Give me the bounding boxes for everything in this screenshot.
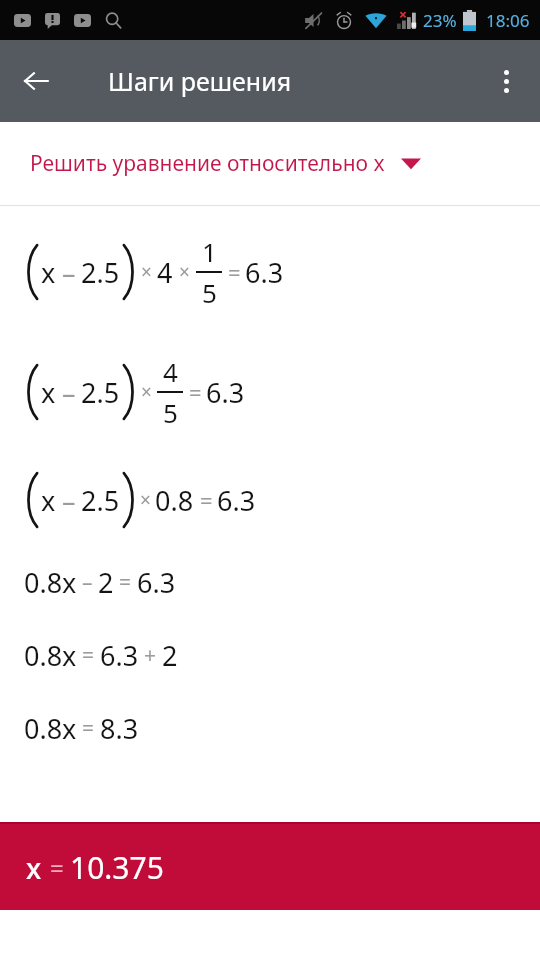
staticText: × bbox=[140, 487, 151, 513]
staticText: 6.3 bbox=[245, 254, 284, 291]
staticText: – bbox=[82, 568, 93, 597]
staticText: + bbox=[144, 641, 157, 670]
staticText: 0.8x bbox=[24, 637, 77, 674]
staticText: – bbox=[62, 254, 76, 291]
staticText: = bbox=[50, 851, 64, 884]
staticText: 6.3 bbox=[100, 637, 139, 674]
staticText: × bbox=[179, 259, 190, 285]
staticText: – bbox=[62, 374, 76, 411]
staticText: 4 bbox=[157, 254, 173, 291]
staticText: Решить уравнение относительно x bbox=[30, 149, 385, 178]
staticText: 6.3 bbox=[206, 374, 245, 411]
staticText: 5 bbox=[202, 275, 217, 310]
button[interactable]: Back bbox=[10, 55, 62, 107]
staticText: 5 bbox=[163, 395, 178, 430]
staticText: 4 bbox=[163, 354, 178, 389]
staticText: 2 bbox=[162, 637, 178, 674]
staticText: Шаги решения bbox=[108, 64, 292, 98]
staticText: x bbox=[26, 849, 42, 887]
staticText: = bbox=[228, 257, 241, 287]
button[interactable]: More options bbox=[480, 55, 532, 107]
staticText: × bbox=[141, 259, 152, 285]
staticText: = bbox=[119, 568, 132, 597]
staticText: x bbox=[41, 254, 56, 291]
staticText: 6.3 bbox=[137, 564, 176, 601]
staticText: 0.8x bbox=[24, 564, 77, 601]
staticText: = bbox=[82, 714, 95, 743]
staticText: 1 bbox=[202, 234, 217, 269]
staticText: – bbox=[62, 482, 76, 519]
staticText: 2.5 bbox=[81, 374, 120, 411]
staticText: 2 bbox=[98, 564, 114, 601]
button[interactable]: x bbox=[0, 824, 540, 910]
staticText: = bbox=[82, 641, 95, 670]
staticText: 2.5 bbox=[81, 482, 120, 519]
staticText: 18:06 bbox=[486, 9, 530, 32]
staticText: = bbox=[189, 377, 202, 407]
staticText: x bbox=[41, 482, 56, 519]
staticText: 0.8x bbox=[24, 710, 77, 747]
staticText: 23% bbox=[423, 9, 457, 32]
staticText: 6.3 bbox=[217, 482, 256, 519]
staticText: × bbox=[141, 379, 152, 405]
staticText: x bbox=[41, 374, 56, 411]
staticText: = bbox=[200, 485, 213, 515]
staticText: 10.375 bbox=[70, 847, 164, 888]
staticText: 8.3 bbox=[100, 710, 139, 747]
staticText: 2.5 bbox=[81, 254, 120, 291]
staticText: 0.8 bbox=[155, 482, 194, 519]
button[interactable]: Решить уравнение относительно x bbox=[0, 122, 540, 205]
